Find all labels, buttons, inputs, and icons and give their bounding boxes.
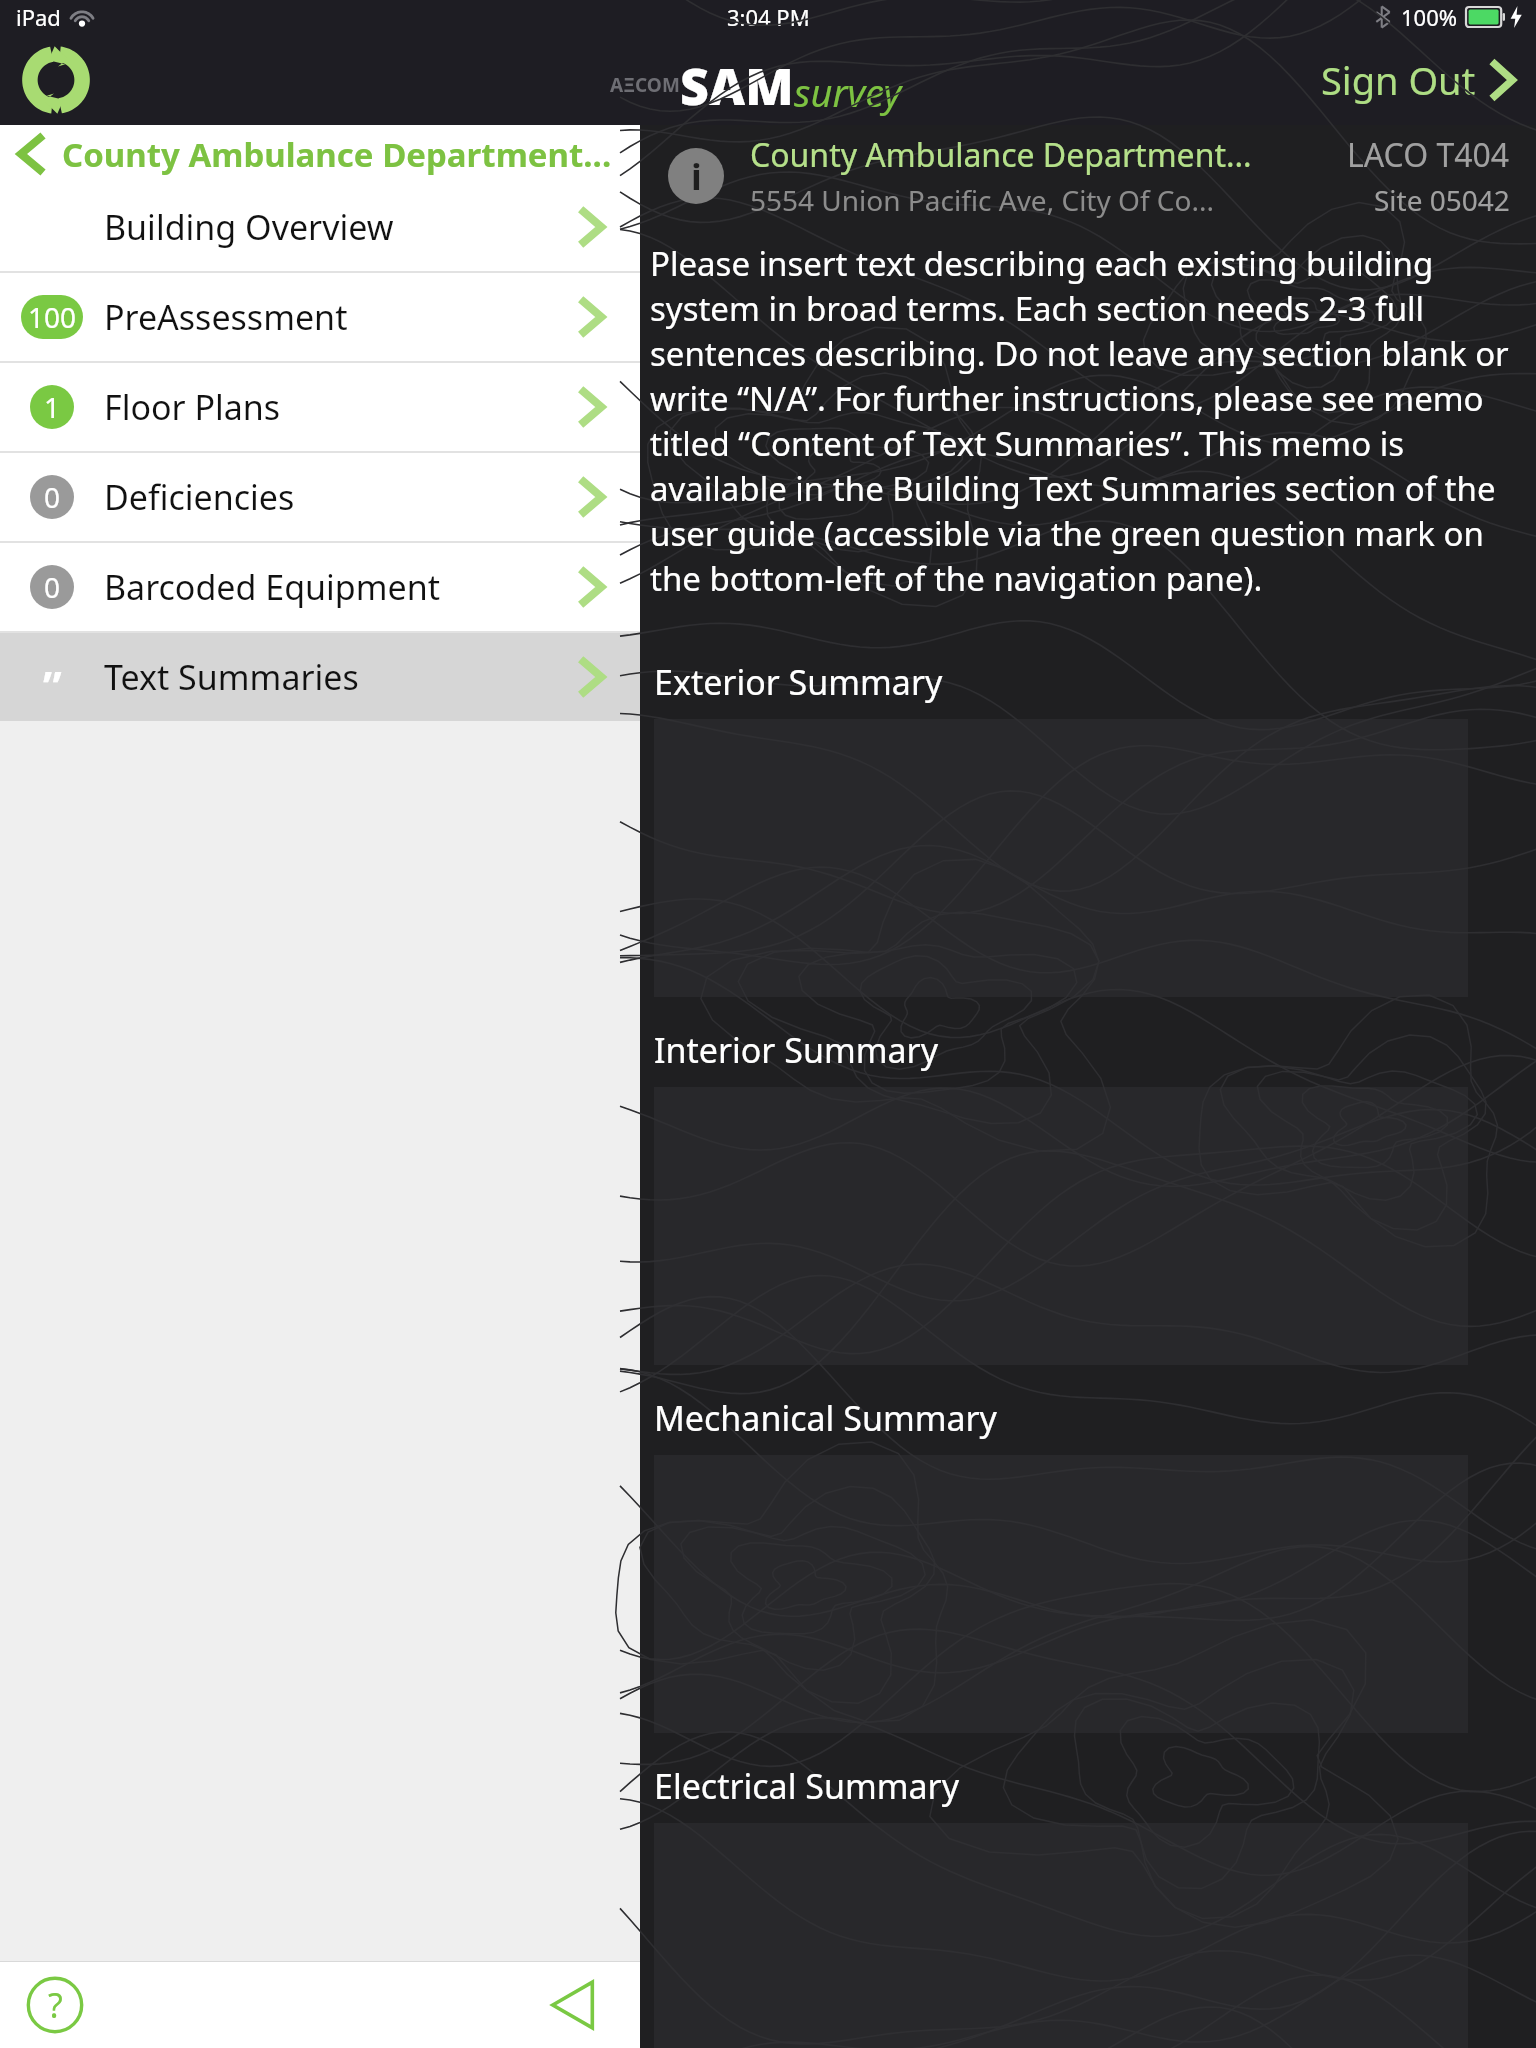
staticText: LACO T404 [1347, 133, 1510, 177]
button[interactable]: Sign Out [1301, 42, 1536, 118]
staticText: Electrical Summary [654, 1763, 959, 1809]
button[interactable]: AECOM home [20, 44, 92, 116]
staticText: 3:04 PM [727, 2, 810, 32]
staticText: ? [48, 1982, 63, 2028]
staticText: SAM [680, 52, 794, 120]
button[interactable]: 0 [0, 543, 640, 631]
staticText: i [691, 152, 702, 201]
button[interactable]: Building Overview [0, 183, 640, 271]
staticText: Building Overview [104, 204, 544, 250]
staticText: Please insert text describing each exist… [650, 241, 1514, 601]
button[interactable]: 100 [0, 273, 640, 361]
staticText: Floor Plans [104, 384, 544, 430]
staticText: PreAssessment [104, 294, 544, 340]
button[interactable]: Previous [544, 1976, 602, 2034]
staticText: iPad [16, 2, 61, 32]
staticText: Interior Summary [654, 1027, 938, 1073]
button[interactable]: ” [0, 633, 640, 721]
button[interactable]: 1 [0, 363, 640, 451]
staticText: County Ambulance Department... [750, 133, 1252, 177]
staticText: 0 [44, 568, 61, 606]
staticText: Exterior Summary [654, 659, 943, 705]
button[interactable]: Help [26, 1976, 84, 2034]
button[interactable]: County Ambulance Department... [0, 125, 640, 183]
staticText: Deficiencies [104, 474, 544, 520]
staticText: 5554 Union Pacific Ave, City Of Co... [750, 181, 1214, 219]
staticText: 1 [44, 388, 61, 426]
staticText: Text Summaries [104, 654, 544, 700]
staticText: 0 [44, 478, 61, 516]
staticText: ” [43, 657, 62, 714]
staticText: AΞCOM [610, 72, 680, 98]
staticText: survey [794, 66, 902, 118]
staticText: Site 05042 [1374, 181, 1510, 219]
staticText: 100 [28, 298, 77, 336]
staticText: County Ambulance Department... [62, 132, 612, 177]
staticText: Barcoded Equipment [104, 564, 544, 610]
button[interactable]: i [640, 125, 1536, 227]
staticText: Mechanical Summary [654, 1395, 997, 1441]
staticText: 100% [1401, 2, 1458, 32]
button[interactable]: 0 [0, 453, 640, 541]
staticText: Sign Out [1321, 54, 1476, 106]
